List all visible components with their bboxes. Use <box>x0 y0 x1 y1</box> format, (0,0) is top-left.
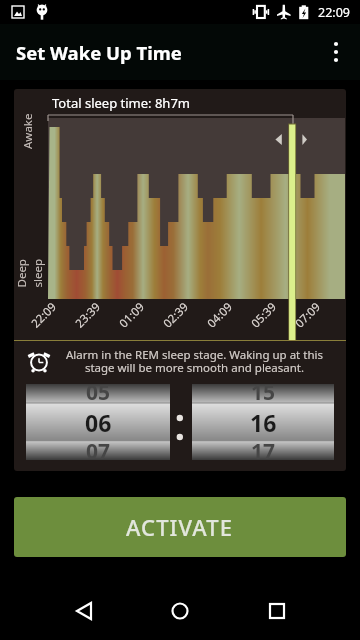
staticText: Alarm in the REM sleep stage. Waking up … <box>54 347 335 375</box>
button[interactable]: Home <box>155 586 205 636</box>
staticText: Deep <box>14 258 29 287</box>
button[interactable]: 15 <box>192 384 334 460</box>
staticText: 16 <box>250 407 277 438</box>
staticText: 02:39 <box>160 299 192 331</box>
staticText: 05:39 <box>248 299 280 331</box>
staticText: 04:09 <box>204 299 236 331</box>
staticText: 22:09 <box>318 4 350 21</box>
staticText: ACTIVATE <box>126 512 234 542</box>
staticText: 01:09 <box>116 299 148 331</box>
staticText: 05 <box>86 384 111 407</box>
button[interactable]: 05 <box>26 384 170 460</box>
staticText: sleep <box>29 258 45 287</box>
button[interactable]: Back <box>60 586 110 636</box>
button[interactable]: ACTIVATE <box>14 497 346 557</box>
staticText: Set Wake Up Time <box>16 40 182 65</box>
button[interactable]: Recents <box>252 586 302 636</box>
staticText: Total sleep time: 8h7m <box>52 94 190 112</box>
staticText: Awake <box>20 113 36 149</box>
staticText: 07 <box>86 437 111 460</box>
staticText: 17 <box>251 437 276 460</box>
staticText: 23:39 <box>72 299 104 331</box>
staticText: 07:09 <box>292 299 324 331</box>
staticText: 22:09 <box>28 299 60 331</box>
staticText: 15 <box>251 384 276 407</box>
staticText: 06 <box>85 407 112 438</box>
button[interactable]: More options <box>320 24 360 80</box>
